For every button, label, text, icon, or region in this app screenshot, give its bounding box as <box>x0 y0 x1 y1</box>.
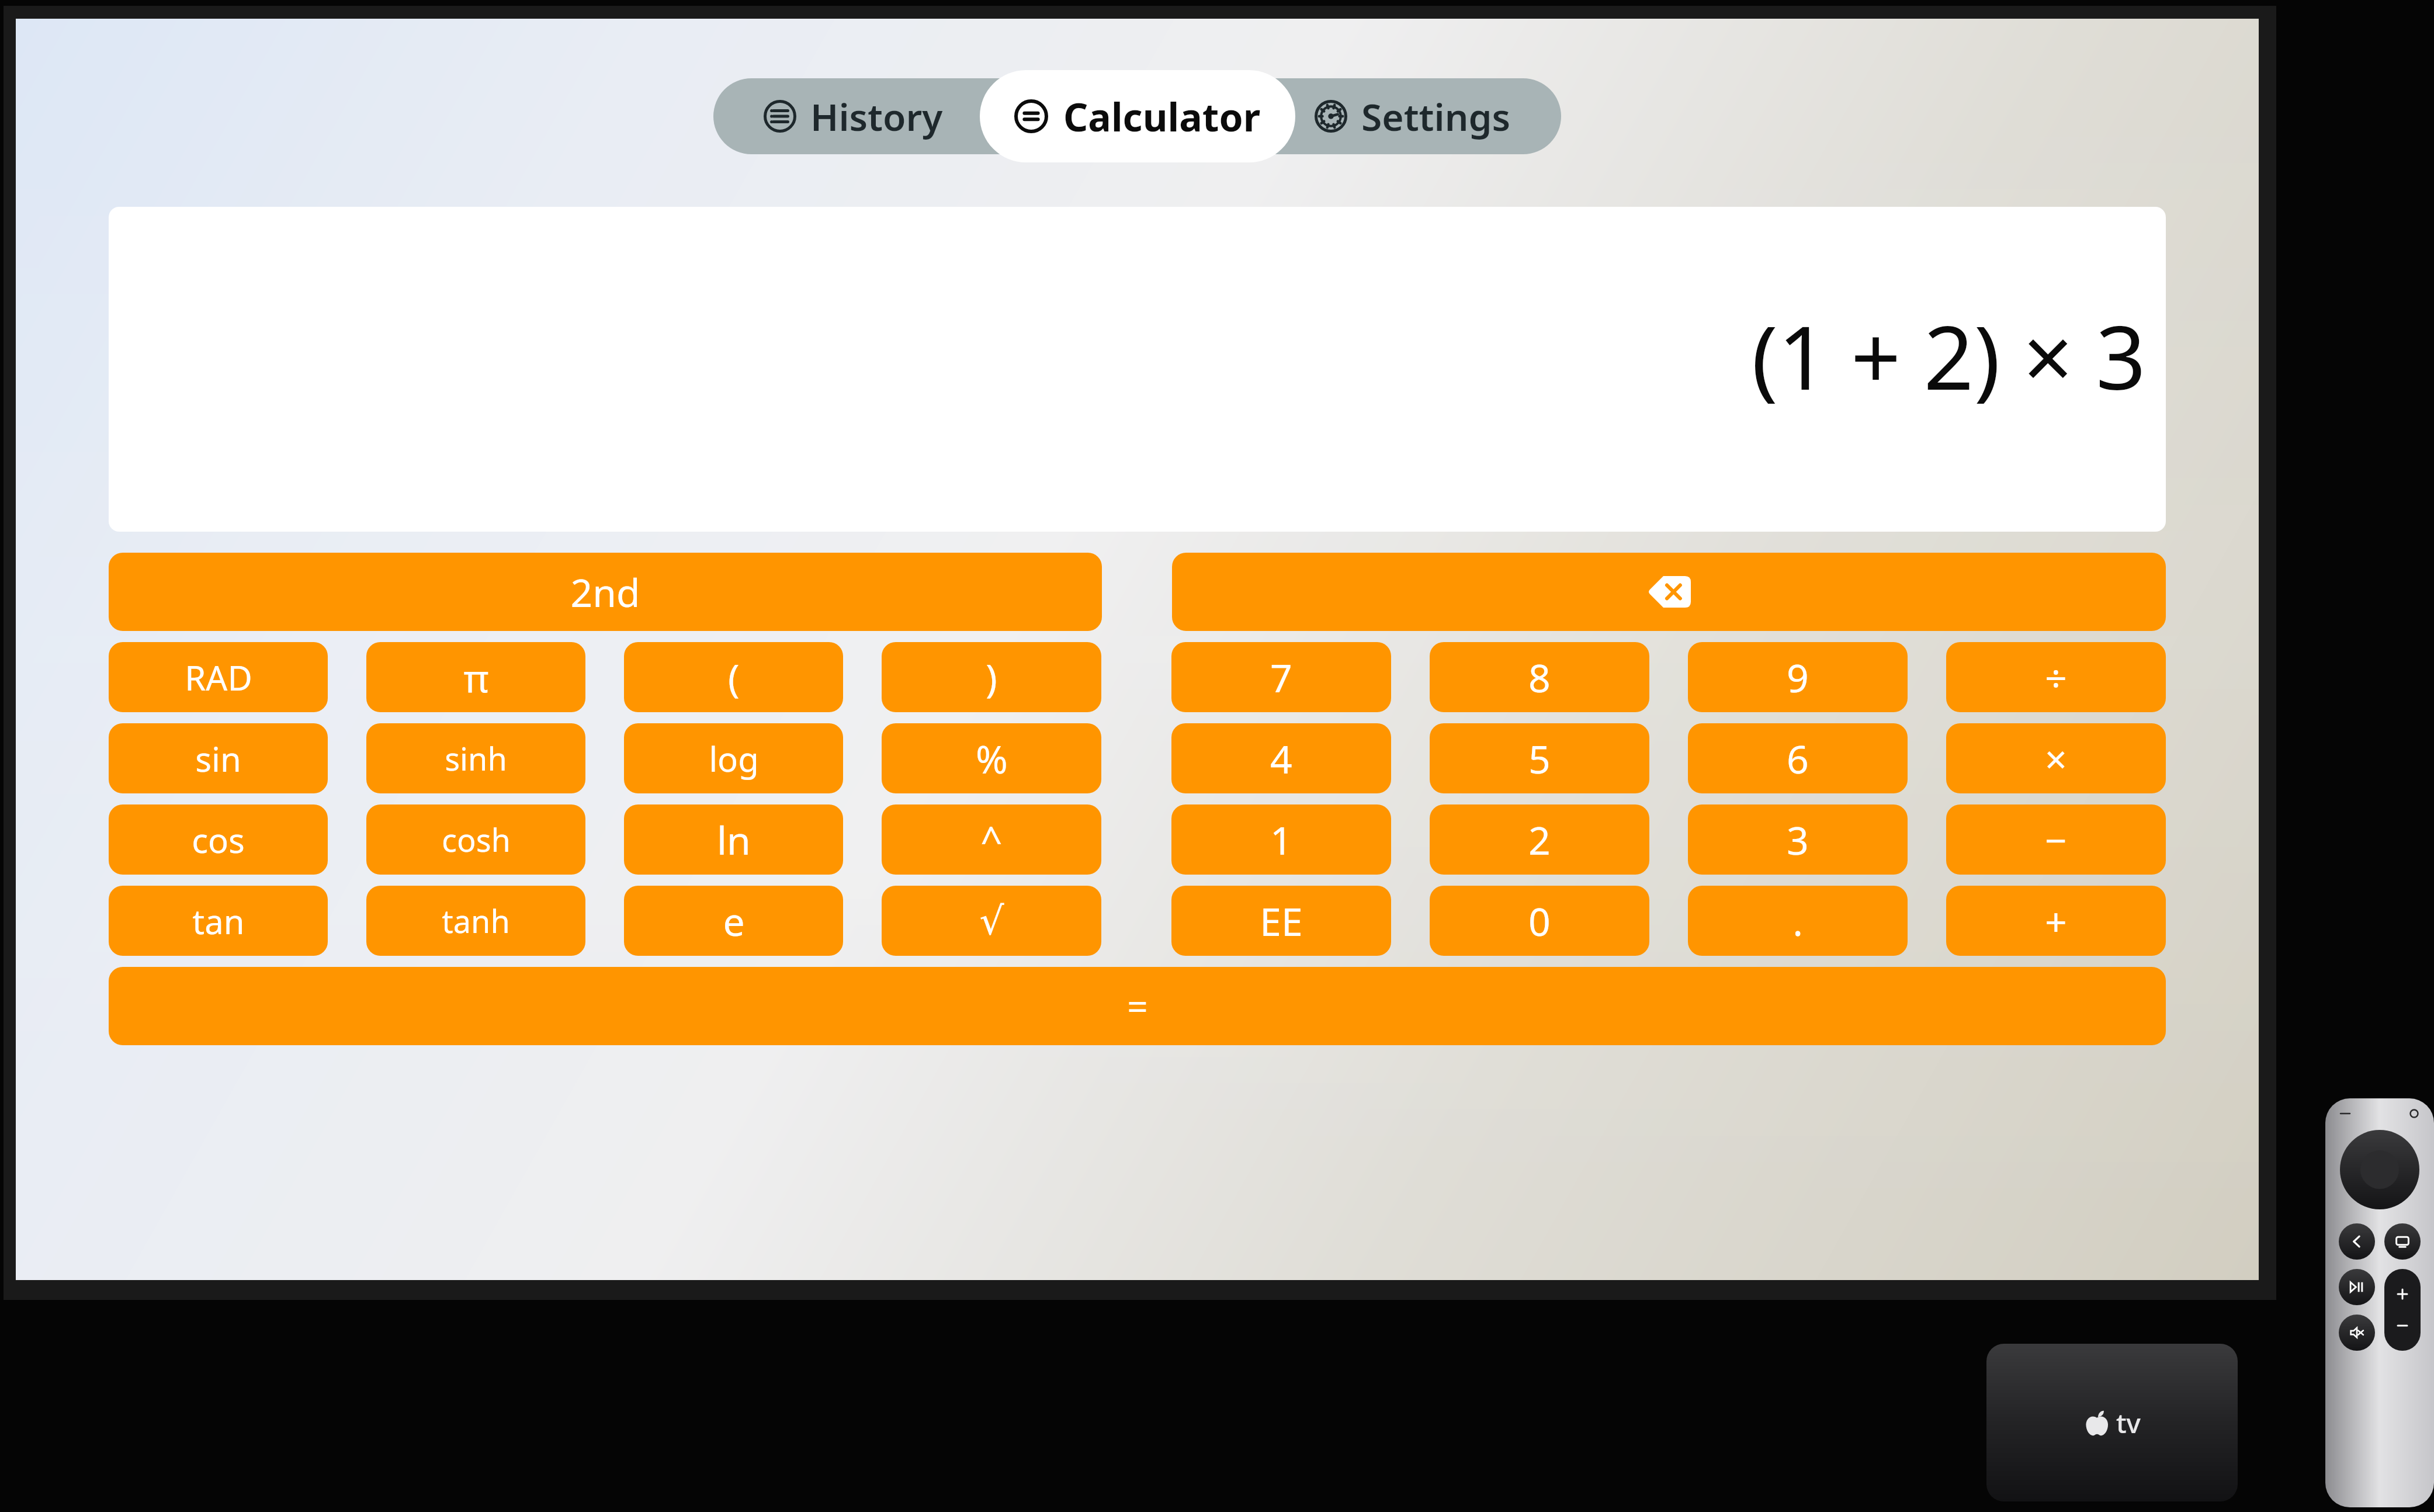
button[interactable]: − <box>1946 804 2166 875</box>
button[interactable]: cos <box>109 804 328 875</box>
staticText: √ <box>979 899 1004 944</box>
staticText: RAD <box>185 654 252 700</box>
button[interactable]: % <box>882 723 1101 793</box>
staticText: cos <box>192 817 245 863</box>
staticText: ^ <box>980 813 1003 866</box>
staticText: Calculator <box>1063 90 1261 143</box>
staticText: 9 <box>1787 651 1809 703</box>
button[interactable]: × <box>1946 723 2166 793</box>
button[interactable]: + <box>1946 886 2166 956</box>
button[interactable]: = <box>109 967 2166 1045</box>
staticText: 5 <box>1528 732 1551 785</box>
button[interactable]: √ <box>882 886 1101 956</box>
staticText: 2 <box>1528 813 1551 866</box>
staticText: cosh <box>442 818 511 861</box>
staticText: % <box>976 732 1008 785</box>
button[interactable]: log <box>624 723 843 793</box>
button[interactable]: . <box>1688 886 1908 956</box>
button[interactable]: 2 <box>1430 804 1649 875</box>
staticText: + <box>2045 894 2067 947</box>
staticText: 6 <box>1787 732 1809 785</box>
button[interactable]: Backspace <box>1172 553 2166 631</box>
button[interactable]: 4 <box>1171 723 1391 793</box>
button[interactable]: π <box>366 642 585 712</box>
button[interactable]: sinh <box>366 723 585 793</box>
staticText: EE <box>1260 894 1303 947</box>
staticText: 2nd <box>570 566 640 618</box>
button[interactable]: RAD <box>109 642 328 712</box>
staticText: History <box>810 91 943 142</box>
staticText: ) <box>986 651 997 703</box>
staticText: ÷ <box>2045 651 2067 703</box>
staticText: sin <box>195 736 241 782</box>
button[interactable]: e <box>624 886 843 956</box>
staticText: 3 <box>1787 813 1809 866</box>
staticText: − <box>2045 813 2067 866</box>
button[interactable]: sin <box>109 723 328 793</box>
staticText: log <box>709 736 759 782</box>
button[interactable]: tan <box>109 886 328 956</box>
button[interactable]: ( <box>624 642 843 712</box>
staticText: π <box>463 651 489 703</box>
staticText: tan <box>192 898 245 944</box>
button[interactable]: Settings <box>1315 78 1511 154</box>
button[interactable]: tanh <box>366 886 585 956</box>
staticText: 7 <box>1270 651 1292 703</box>
button[interactable]: 3 <box>1688 804 1908 875</box>
button[interactable]: ) <box>882 642 1101 712</box>
button[interactable]: 6 <box>1688 723 1908 793</box>
button[interactable]: 8 <box>1430 642 1649 712</box>
button[interactable]: EE <box>1171 886 1391 956</box>
staticText: Settings <box>1361 91 1511 142</box>
staticText: tanh <box>442 899 510 942</box>
button[interactable]: 9 <box>1688 642 1908 712</box>
button[interactable]: ln <box>624 804 843 875</box>
button[interactable]: (1 + 2) × 3 <box>109 207 2166 532</box>
button[interactable]: History <box>764 78 943 154</box>
staticText: tv <box>2116 1405 2141 1441</box>
button[interactable]: 0 <box>1430 886 1649 956</box>
button[interactable]: 5 <box>1430 723 1649 793</box>
staticText: 4 <box>1270 732 1292 785</box>
button[interactable]: cosh <box>366 804 585 875</box>
button[interactable]: ÷ <box>1946 642 2166 712</box>
staticText: (1 + 2) × 3 <box>1751 296 2146 415</box>
staticText: ln <box>717 813 751 866</box>
staticText: × <box>2045 732 2067 785</box>
button[interactable]: ^ <box>882 804 1101 875</box>
staticText: sinh <box>445 737 507 780</box>
staticText: 0 <box>1528 894 1551 947</box>
staticText: ( <box>728 651 740 703</box>
staticText: e <box>723 894 745 947</box>
button[interactable]: 1 <box>1171 804 1391 875</box>
staticText: 1 <box>1270 813 1292 866</box>
staticText: = <box>1127 982 1148 1031</box>
button[interactable]: 2nd <box>109 553 1102 631</box>
button[interactable]: Calculator <box>980 70 1295 162</box>
staticText: . <box>1792 894 1803 947</box>
button[interactable]: 7 <box>1171 642 1391 712</box>
staticText: 8 <box>1528 651 1551 703</box>
